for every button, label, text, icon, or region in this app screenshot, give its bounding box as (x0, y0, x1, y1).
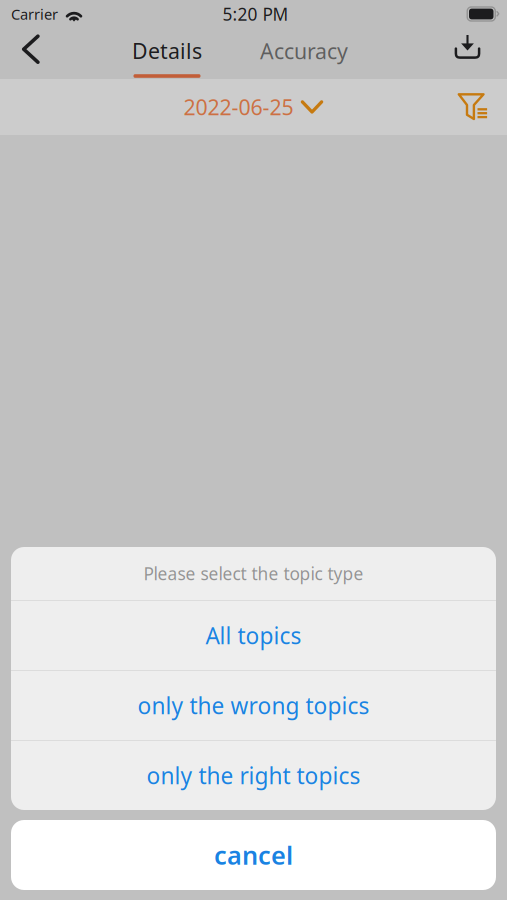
button[interactable]: only the right topics (11, 741, 496, 810)
button[interactable]: Back (0, 28, 58, 79)
staticText: Accuracy (260, 37, 348, 65)
button[interactable]: Filter (446, 79, 500, 135)
staticText: Carrier (11, 4, 58, 24)
button[interactable]: All topics (11, 601, 496, 670)
staticText: All topics (205, 620, 301, 650)
staticText: only the right topics (146, 760, 360, 790)
button[interactable]: Download (441, 28, 507, 79)
button[interactable]: 2022-06-25 (183, 79, 323, 135)
button[interactable]: Accuracy (253, 28, 355, 79)
staticText: cancel (214, 838, 293, 872)
staticText: 2022-06-25 (183, 93, 293, 121)
button[interactable]: only the wrong topics (11, 671, 496, 740)
button[interactable]: cancel (11, 820, 496, 890)
staticText: Details (132, 36, 202, 65)
staticText: 5:20 PM (222, 2, 288, 25)
button[interactable]: Details (116, 28, 218, 79)
staticText: Please select the topic type (143, 562, 363, 585)
staticText: only the wrong topics (137, 690, 369, 720)
